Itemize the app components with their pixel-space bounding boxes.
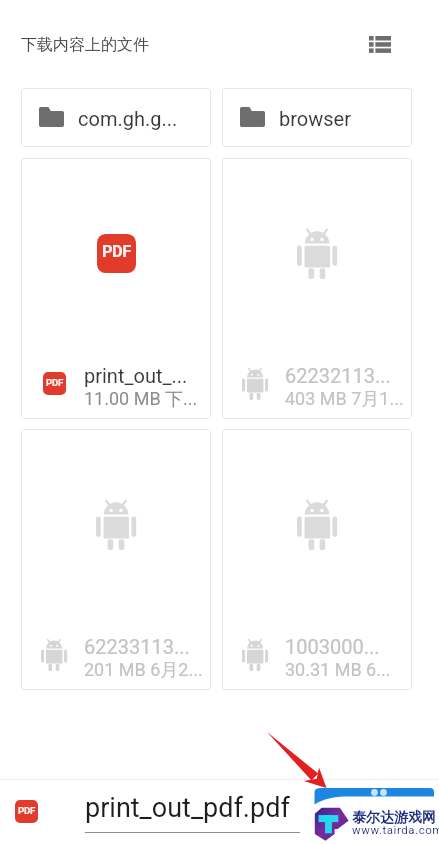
staticText: print_out_pdf.pdf bbox=[85, 792, 290, 824]
staticText: 62233113... bbox=[84, 635, 190, 658]
button[interactable]: 62232113... bbox=[222, 158, 412, 419]
button[interactable]: Switch to list view bbox=[358, 22, 402, 66]
button[interactable]: 62233113... bbox=[21, 429, 211, 690]
staticText: 62232113... bbox=[285, 364, 391, 387]
staticText: 201 MB 6月2... bbox=[84, 659, 203, 682]
button[interactable]: browser bbox=[222, 88, 412, 147]
staticText: 下载内容上的文件 bbox=[21, 35, 149, 55]
button[interactable]: PDF bbox=[21, 158, 211, 419]
staticText: 11.00 MB 下... bbox=[84, 388, 198, 411]
staticText: browser bbox=[279, 107, 351, 130]
staticText: PDF bbox=[102, 242, 131, 261]
staticText: 泰尔达游戏网 bbox=[352, 809, 436, 827]
staticText: PDF bbox=[18, 805, 35, 816]
button[interactable]: 1003000... bbox=[222, 429, 412, 690]
staticText: 403 MB 7月1... bbox=[285, 388, 404, 411]
staticText: print_out_... bbox=[84, 364, 188, 387]
staticText: 1003000... bbox=[285, 635, 380, 658]
staticText: PDF bbox=[46, 377, 63, 388]
staticText: 30.31 MB 6... bbox=[285, 659, 391, 680]
staticText: com.gh.g... bbox=[78, 107, 178, 130]
button[interactable]: com.gh.g... bbox=[21, 88, 211, 147]
staticText: www.tairda.com bbox=[352, 823, 439, 836]
button[interactable]: PDF bbox=[0, 780, 439, 844]
